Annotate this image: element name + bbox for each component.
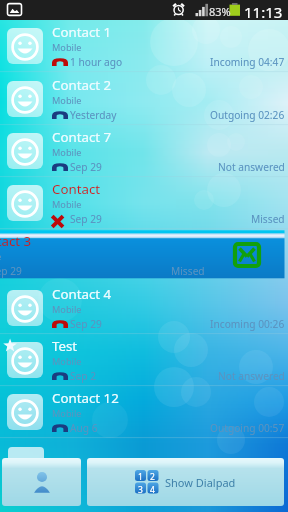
staticText: Show Dialpad xyxy=(165,475,236,490)
staticText: 11:13 xyxy=(244,2,283,22)
button[interactable]: Contacts xyxy=(2,458,81,506)
staticText: Incoming 04:47 xyxy=(210,55,285,69)
staticText: Contact 4 xyxy=(52,285,112,303)
staticText: Missed xyxy=(251,212,285,226)
staticText: Mobile xyxy=(52,303,82,316)
button[interactable]: Contact xyxy=(0,177,288,229)
staticText: 1 xyxy=(138,471,143,483)
staticText: Sep 2 xyxy=(70,369,97,383)
staticText: 3 xyxy=(138,484,143,496)
staticText: Mobile xyxy=(52,198,82,211)
staticText: Sep 29 xyxy=(70,212,102,226)
staticText: Contact 2 xyxy=(52,76,112,94)
staticText: Contact 7 xyxy=(52,128,112,146)
button[interactable]: Test xyxy=(0,334,288,386)
staticText: Missed xyxy=(171,264,205,278)
button[interactable]: 1 xyxy=(87,458,284,506)
staticText: 2 xyxy=(150,471,155,483)
button[interactable]: Contact 1 xyxy=(0,20,288,72)
button[interactable]: Contact 12 xyxy=(0,386,288,438)
staticText: Incoming 00:26 xyxy=(210,317,285,331)
staticText: Outgoing 02:26 xyxy=(210,108,285,122)
button[interactable]: Contact 7 xyxy=(0,125,288,177)
staticText: Sep 29 xyxy=(0,264,22,278)
button[interactable]: Contact 4 xyxy=(0,282,288,334)
staticText: Not answered xyxy=(218,160,285,174)
staticText: Test xyxy=(52,337,78,355)
staticText: Contact xyxy=(52,180,101,198)
staticText: Mobile xyxy=(0,250,2,263)
staticText: Contact 3 xyxy=(0,232,32,250)
button[interactable]: Send message xyxy=(233,242,261,268)
button[interactable]: Contact 3 xyxy=(0,229,288,281)
staticText: Mobile xyxy=(52,146,82,159)
staticText: Aug 6 xyxy=(70,421,98,435)
staticText: Not answered xyxy=(218,369,285,383)
staticText: 1 hour ago xyxy=(70,55,123,69)
staticText: Mobile xyxy=(52,355,82,368)
staticText: Mobile xyxy=(52,41,82,54)
staticText: Yesterday xyxy=(70,108,117,122)
button[interactable] xyxy=(8,447,44,458)
staticText: Mobile xyxy=(52,407,82,420)
staticText: 83% xyxy=(209,4,231,19)
staticText: Contact 1 xyxy=(52,23,112,41)
button[interactable]: Contact 2 xyxy=(0,73,288,125)
staticText: Mobile xyxy=(52,94,82,107)
staticText: 4 xyxy=(150,484,155,496)
staticText: Contact 12 xyxy=(52,389,119,407)
staticText: Sep 29 xyxy=(70,317,102,331)
staticText: Sep 29 xyxy=(70,160,102,174)
staticText: Outgoing 00:57 xyxy=(210,421,285,435)
